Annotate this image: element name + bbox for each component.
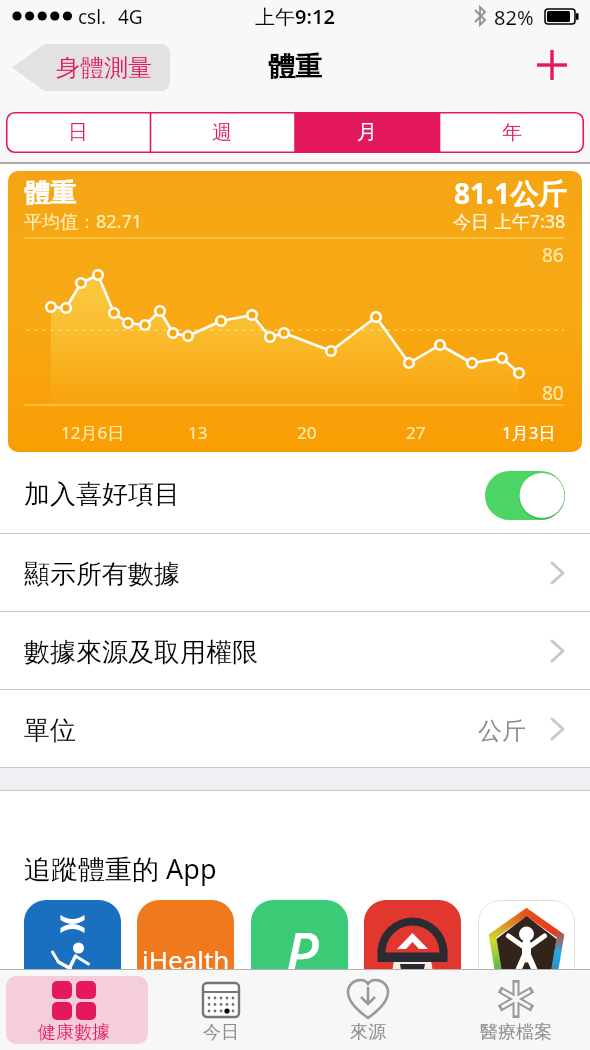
staticText: 今日 上午7:38 [453,209,566,234]
staticText: 12月6日 [61,421,125,444]
staticText: 身體測量 [56,53,152,83]
button[interactable]: 單位 [0,690,590,767]
staticText: 82% [494,4,534,31]
staticText: 數據來源及取用權限 [24,636,258,669]
staticText: 今日 [203,1021,239,1044]
button[interactable]: 今日 [147,969,294,1050]
button[interactable]: P [251,900,348,997]
staticText: 醫療檔案 [480,1021,552,1044]
staticText: 27 [406,421,426,444]
staticText: 體重 [24,177,76,210]
button[interactable]: 週 [150,112,294,153]
staticText: 80 [542,380,564,406]
button[interactable]: 月 [294,112,439,153]
staticText: 1月3日 [502,421,556,444]
staticText: 公斤 [478,716,526,746]
staticText: 單位 [24,714,76,747]
staticText: 81.1公斤 [454,174,566,212]
staticText: 年 [502,120,522,145]
button[interactable]: 日 [6,112,150,153]
staticText: 來源 [350,1021,386,1044]
button[interactable]: 加入喜好項目 [0,453,590,533]
button[interactable] [24,900,121,997]
staticText: P [285,913,319,992]
button[interactable]: 數據來源及取用權限 [0,612,590,689]
staticText: 顯示所有數據 [24,558,180,591]
staticText: 體重 [268,50,322,84]
staticText: csl. [78,4,107,30]
staticText: 20 [297,421,317,444]
button[interactable]: iHealth [137,900,234,997]
button[interactable]: 身體測量 [12,44,170,92]
button[interactable]: 健康數據 [0,969,147,1050]
staticText: 健康數據 [38,1021,110,1044]
staticText: 上午9:12 [255,3,335,30]
staticText: 週 [212,120,232,145]
staticText: 13 [188,421,208,444]
button[interactable]: 體重 [8,171,582,452]
staticText: 日 [68,120,88,145]
button[interactable]: 年 [439,112,584,153]
staticText: 86 [542,242,564,268]
staticText: 加入喜好項目 [24,478,180,511]
staticText: 月 [357,120,377,145]
staticText: 4G [118,4,143,30]
button[interactable] [531,44,573,86]
button[interactable] [364,900,461,997]
staticText: iHealth [142,942,230,977]
button[interactable]: 來源 [294,969,442,1050]
staticText: 追蹤體重的 App [24,850,217,887]
button[interactable]: 醫療檔案 [442,969,590,1050]
staticText: 平均值：82.71 [24,209,143,234]
button[interactable]: 顯示所有數據 [0,534,590,611]
button[interactable] [478,900,575,997]
